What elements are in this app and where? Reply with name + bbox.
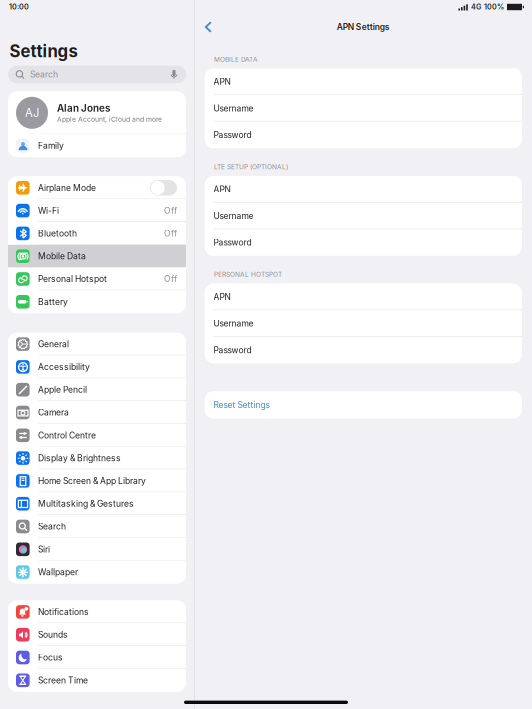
button[interactable]: Notifications — [8, 600, 186, 623]
staticText: Off — [164, 274, 177, 284]
staticText: Alan Jones — [57, 102, 110, 114]
staticText: Multitasking & Gestures — [38, 498, 134, 509]
button[interactable]: Search — [8, 515, 186, 538]
button[interactable]: Password — [205, 337, 522, 363]
button[interactable]: Password — [205, 122, 522, 148]
button[interactable]: Camera — [8, 401, 186, 424]
staticText: Bluetooth — [38, 228, 77, 238]
button[interactable]: Password — [205, 229, 522, 256]
button[interactable]: Airplane Mode — [8, 176, 186, 199]
staticText: Username — [214, 318, 254, 329]
staticText: Search — [30, 69, 58, 80]
staticText: Mobile Data — [38, 251, 86, 261]
button[interactable]: Personal Hotspot — [8, 268, 186, 290]
staticText: APN — [214, 184, 231, 194]
staticText: General — [38, 339, 69, 349]
staticText: AJ — [25, 106, 39, 120]
button[interactable]: Battery — [8, 290, 186, 313]
staticText: Apple Pencil — [38, 384, 87, 395]
staticText: Off — [164, 205, 177, 216]
staticText: Screen Time — [38, 675, 88, 685]
staticText: Username — [214, 103, 254, 113]
button[interactable]: Apple Pencil — [8, 378, 186, 401]
staticText: Airplane Mode — [38, 183, 96, 193]
staticText: Sounds — [38, 629, 68, 640]
staticText: Control Centre — [38, 430, 96, 440]
staticText: Off — [164, 228, 177, 238]
staticText: Search — [38, 521, 66, 532]
staticText: Password — [214, 345, 252, 355]
staticText: APN — [214, 77, 231, 87]
button[interactable]: Screen Time — [8, 669, 186, 692]
staticText: Battery — [38, 297, 68, 307]
button[interactable]: Siri — [8, 538, 186, 561]
staticText: Siri — [38, 544, 50, 554]
staticText: APN — [214, 292, 231, 302]
staticText: Wallpaper — [38, 567, 78, 577]
button[interactable]: Focus — [8, 646, 186, 669]
staticText: Family — [38, 140, 64, 151]
button[interactable]: Wi-Fi — [8, 199, 186, 222]
staticText: Accessibility — [38, 362, 90, 372]
button[interactable]: AJ — [8, 91, 186, 134]
staticText: 100% — [484, 3, 504, 11]
staticText: Settings — [9, 41, 77, 61]
staticText: Home Screen & App Library — [38, 476, 146, 486]
button[interactable]: Bluetooth — [8, 222, 186, 245]
button[interactable]: Family — [8, 134, 186, 157]
staticText: Personal Hotspot — [38, 274, 107, 284]
staticText: Wi-Fi — [38, 205, 59, 216]
button[interactable]: Reset Settings — [195, 391, 532, 419]
staticText: Focus — [38, 652, 63, 663]
button[interactable]: General — [8, 333, 186, 355]
button[interactable]: APN — [205, 176, 522, 203]
staticText: Username — [214, 211, 254, 221]
staticText: Password — [214, 237, 252, 248]
staticText: Reset Settings — [214, 400, 270, 410]
staticText: Notifications — [38, 607, 89, 617]
button[interactable]: Home Screen & App Library — [8, 469, 186, 492]
button[interactable]: Search — [0, 66, 194, 83]
staticText: APN Settings — [337, 22, 390, 32]
button[interactable]: Display & Brightness — [8, 447, 186, 469]
button[interactable]: Back — [195, 16, 219, 38]
button[interactable]: Username — [205, 203, 522, 229]
staticText: Display & Brightness — [38, 453, 121, 463]
staticText: 4G — [471, 3, 481, 11]
button[interactable]: Accessibility — [8, 355, 186, 378]
staticText: 10:00 — [9, 3, 29, 11]
staticText: Apple Account, iCloud and more — [57, 115, 162, 123]
button[interactable]: APN — [205, 68, 522, 95]
button[interactable]: Mobile Data — [8, 245, 186, 268]
staticText: LTE SETUP (OPTIONAL) — [214, 163, 288, 171]
button[interactable]: Username — [205, 95, 522, 122]
button[interactable]: Username — [205, 310, 522, 337]
staticText: Camera — [38, 407, 69, 418]
staticText: Password — [214, 130, 252, 140]
button[interactable]: Wallpaper — [8, 561, 186, 583]
button[interactable]: Sounds — [8, 623, 186, 646]
staticText: PERSONAL HOTSPOT — [214, 270, 282, 278]
staticText: MOBILE DATA — [214, 55, 258, 63]
button[interactable]: APN — [205, 284, 522, 310]
button[interactable]: Multitasking & Gestures — [8, 492, 186, 515]
button[interactable]: Control Centre — [8, 424, 186, 447]
